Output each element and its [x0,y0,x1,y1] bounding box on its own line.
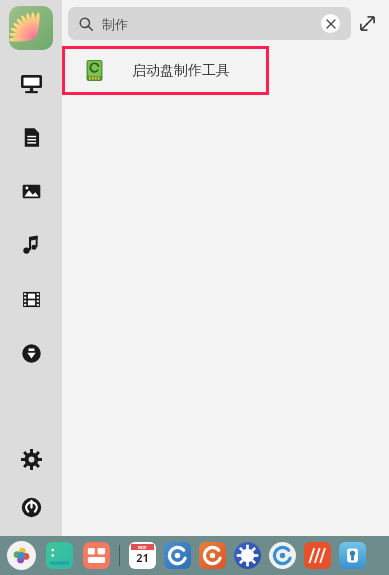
button[interactable]: Computer [16,68,46,98]
button[interactable]: Terminal [46,542,73,569]
button[interactable]: Start menu [7,541,36,570]
button[interactable]: Store [269,542,296,569]
button[interactable]: Pictures [16,176,46,206]
button[interactable]: Files [339,542,366,569]
staticText: NOV [138,545,147,550]
button[interactable]: Media [199,542,226,569]
button[interactable]: 启动盘制作工具 [62,46,269,95]
button[interactable]: Documents [16,122,46,152]
button[interactable]: Music [16,230,46,260]
staticText: 21 [136,550,149,565]
button[interactable]: Browser [164,542,191,569]
button[interactable]: Clear [321,14,340,33]
button[interactable]: Settings app [234,542,261,569]
button[interactable]: Settings [16,444,46,474]
button[interactable]: 制作 [68,7,351,40]
button[interactable]: Videos [16,284,46,314]
button[interactable]: Downloads [16,338,46,368]
button[interactable]: Calendar [129,542,156,569]
staticText: 启动盘制作工具 [132,62,230,80]
button[interactable]: User avatar [9,6,53,50]
staticText: 制作 [102,16,128,32]
button[interactable]: Apps [83,542,110,569]
button[interactable]: Expand [351,7,383,39]
button[interactable]: Power [16,492,46,522]
button[interactable]: App [304,542,331,569]
